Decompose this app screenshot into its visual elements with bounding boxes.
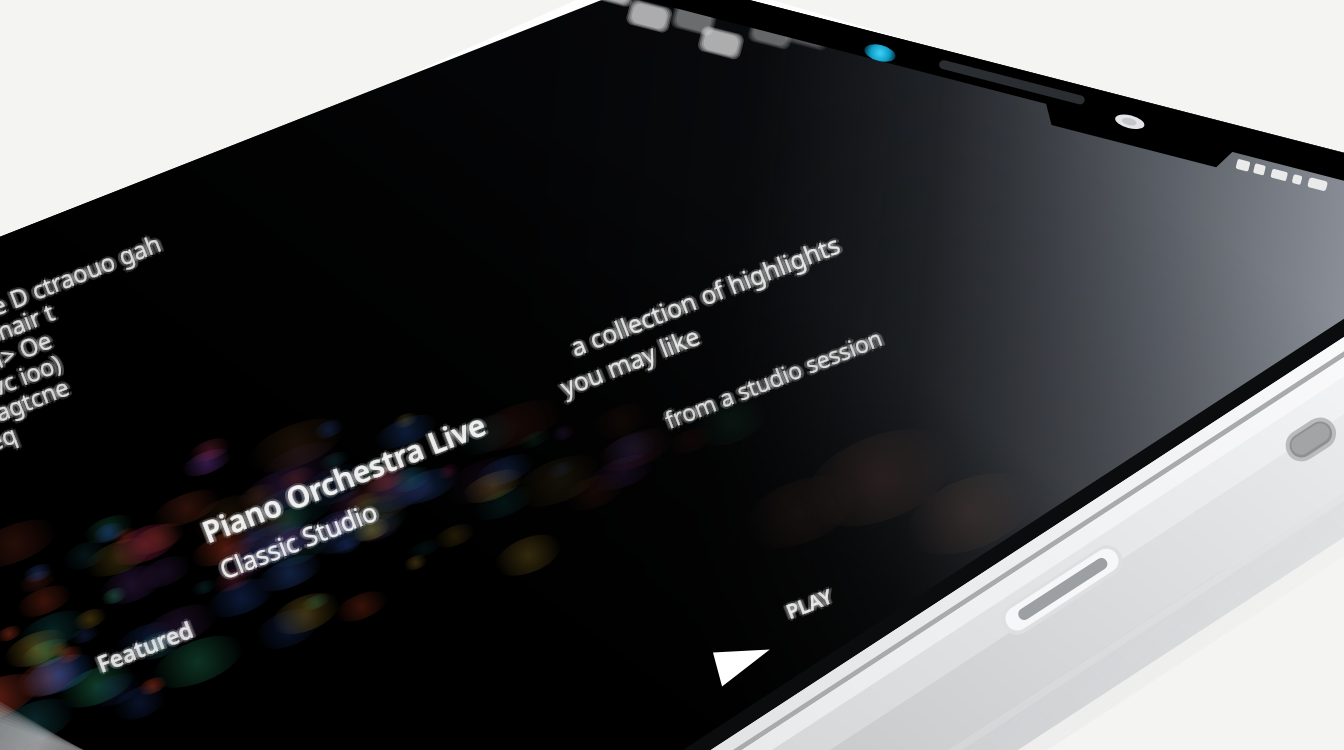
button[interactable]: Play <box>690 580 860 700</box>
button[interactable]: Volume buttons <box>980 548 1150 644</box>
button[interactable]: Power button <box>1280 412 1342 472</box>
button[interactable]: Featured <box>60 600 250 690</box>
button[interactable]: A collection of highlights you may like <box>540 270 940 460</box>
button[interactable]: Piano Orchestra Live, Classic Studio <box>150 400 570 590</box>
